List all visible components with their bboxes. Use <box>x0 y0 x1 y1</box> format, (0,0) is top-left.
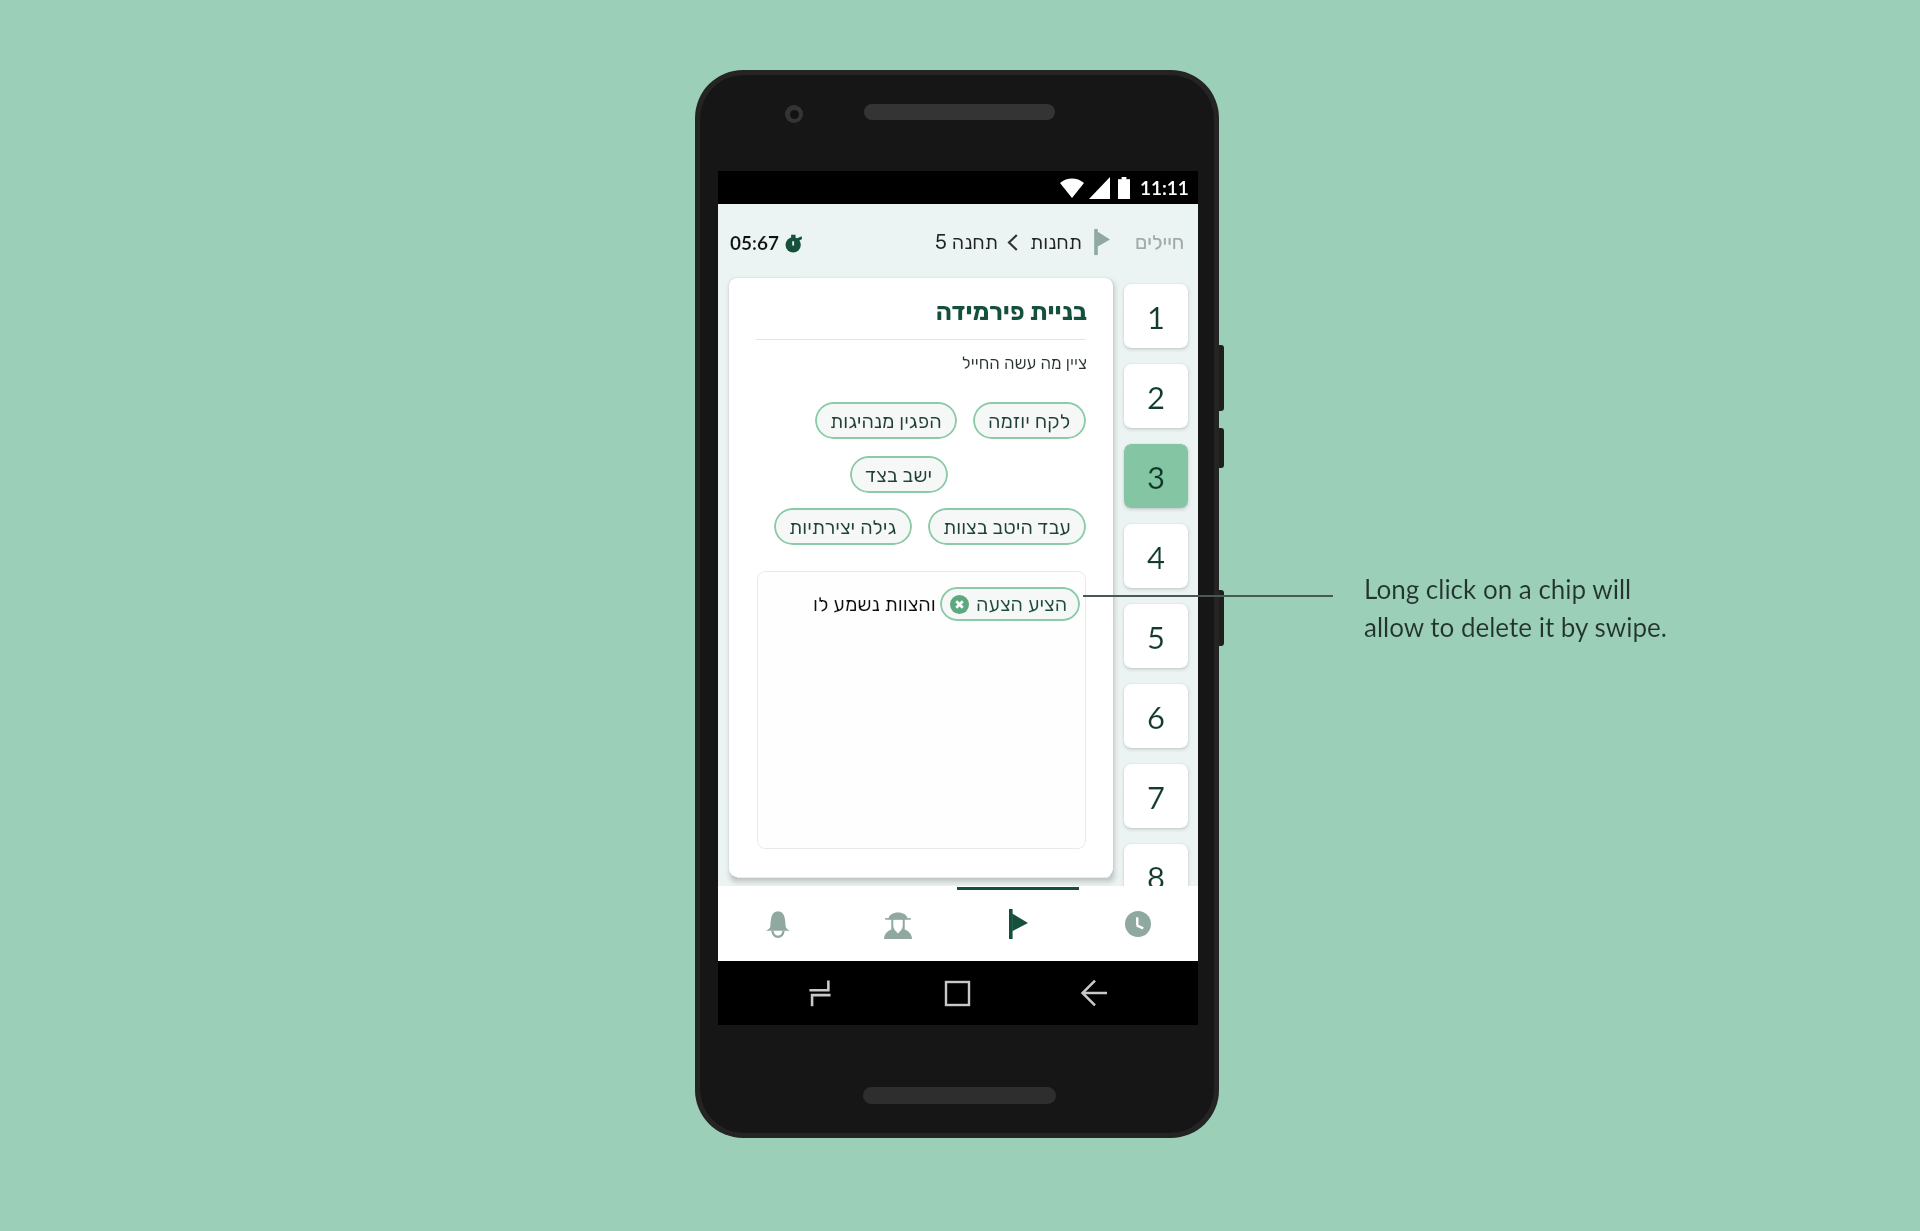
button[interactable]: Notifications <box>753 899 803 949</box>
button[interactable]: גילה יצירתיות <box>774 508 912 545</box>
button[interactable]: 8 <box>1124 844 1188 908</box>
staticText: והצוות נשמע לו <box>813 592 936 616</box>
staticText: 8 <box>1147 858 1165 895</box>
button[interactable]: עבד היטב בצוות <box>928 508 1086 545</box>
staticText: 6 <box>1147 698 1165 735</box>
staticText: 3 <box>1147 458 1165 495</box>
button[interactable]: הפגין מנהיגות <box>815 402 957 439</box>
button[interactable]: 2 <box>1124 364 1188 428</box>
button[interactable]: לקח יוזמה <box>973 402 1086 439</box>
staticText: 5 <box>1147 618 1165 655</box>
staticText: 11:11 <box>1140 176 1189 199</box>
staticText: 05:67 <box>730 231 779 254</box>
staticText: 2 <box>1147 378 1165 415</box>
staticText: ציין מה עשה החייל <box>755 353 1087 373</box>
button[interactable]: 5 <box>1124 604 1188 668</box>
button[interactable]: 4 <box>1124 524 1188 588</box>
staticText: עבד היטב בצוות <box>943 515 1071 539</box>
staticText: תחנות <box>1030 230 1082 254</box>
button[interactable]: 7 <box>1124 764 1188 828</box>
button[interactable]: Stations <box>993 899 1043 949</box>
button[interactable]: Back <box>1074 973 1114 1013</box>
button[interactable]: הציע הצעה <box>940 587 1080 621</box>
staticText: גילה יצירתיות <box>789 515 897 539</box>
button[interactable]: 1 <box>1124 284 1188 348</box>
staticText: ישב בצד <box>865 463 933 487</box>
staticText: חיילים <box>1135 230 1185 254</box>
staticText: allow to delete it by swipe. <box>1364 611 1667 642</box>
staticText: 7 <box>1147 778 1165 815</box>
staticText: Long click on a chip will <box>1364 573 1632 604</box>
button[interactable]: 6 <box>1124 684 1188 748</box>
button[interactable]: Soldiers <box>873 899 923 949</box>
button[interactable]: Home <box>937 973 977 1013</box>
staticText: לקח יוזמה <box>988 409 1071 433</box>
staticText: 4 <box>1147 538 1165 575</box>
button[interactable]: ישב בצד <box>850 456 948 493</box>
staticText: 1 <box>1147 298 1165 335</box>
button[interactable]: Recents <box>800 973 840 1013</box>
button[interactable]: History <box>1113 899 1163 949</box>
staticText: בניית פירמידה <box>755 297 1087 327</box>
button[interactable]: 3 <box>1124 444 1188 508</box>
staticText: הפגין מנהיגות <box>830 409 942 433</box>
staticText: הציע הצעה <box>976 592 1068 616</box>
staticText: 5 תחנה <box>935 230 998 254</box>
